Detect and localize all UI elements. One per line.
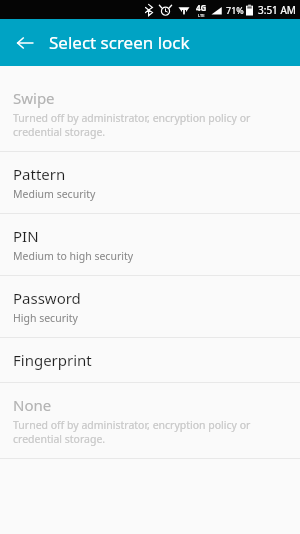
staticText: PIN: [13, 226, 39, 246]
staticText: Swipe: [13, 88, 55, 108]
staticText: 4G: [196, 2, 207, 13]
staticText: Fingerprint: [13, 350, 92, 370]
staticText: Password: [13, 288, 81, 308]
staticText: Turned off by administrator, encryption …: [13, 418, 251, 446]
button[interactable]: Back: [8, 26, 42, 60]
button[interactable]: Swipe: [0, 76, 300, 151]
button[interactable]: Pattern: [0, 152, 300, 213]
staticText: Turned off by administrator, encryption …: [13, 111, 251, 139]
button[interactable]: Password: [0, 276, 300, 337]
button[interactable]: PIN: [0, 214, 300, 275]
staticText: 3:51 AM: [258, 3, 296, 17]
staticText: None: [13, 395, 52, 415]
staticText: High security: [13, 311, 78, 325]
button[interactable]: None: [0, 383, 300, 458]
staticText: Select screen lock: [49, 31, 190, 54]
staticText: Medium to high security: [13, 249, 134, 263]
staticText: Medium security: [13, 187, 96, 201]
staticText: Pattern: [13, 164, 66, 184]
staticText: 71%: [226, 4, 244, 16]
staticText: LTE: [198, 13, 205, 18]
button[interactable]: Fingerprint: [0, 338, 300, 382]
